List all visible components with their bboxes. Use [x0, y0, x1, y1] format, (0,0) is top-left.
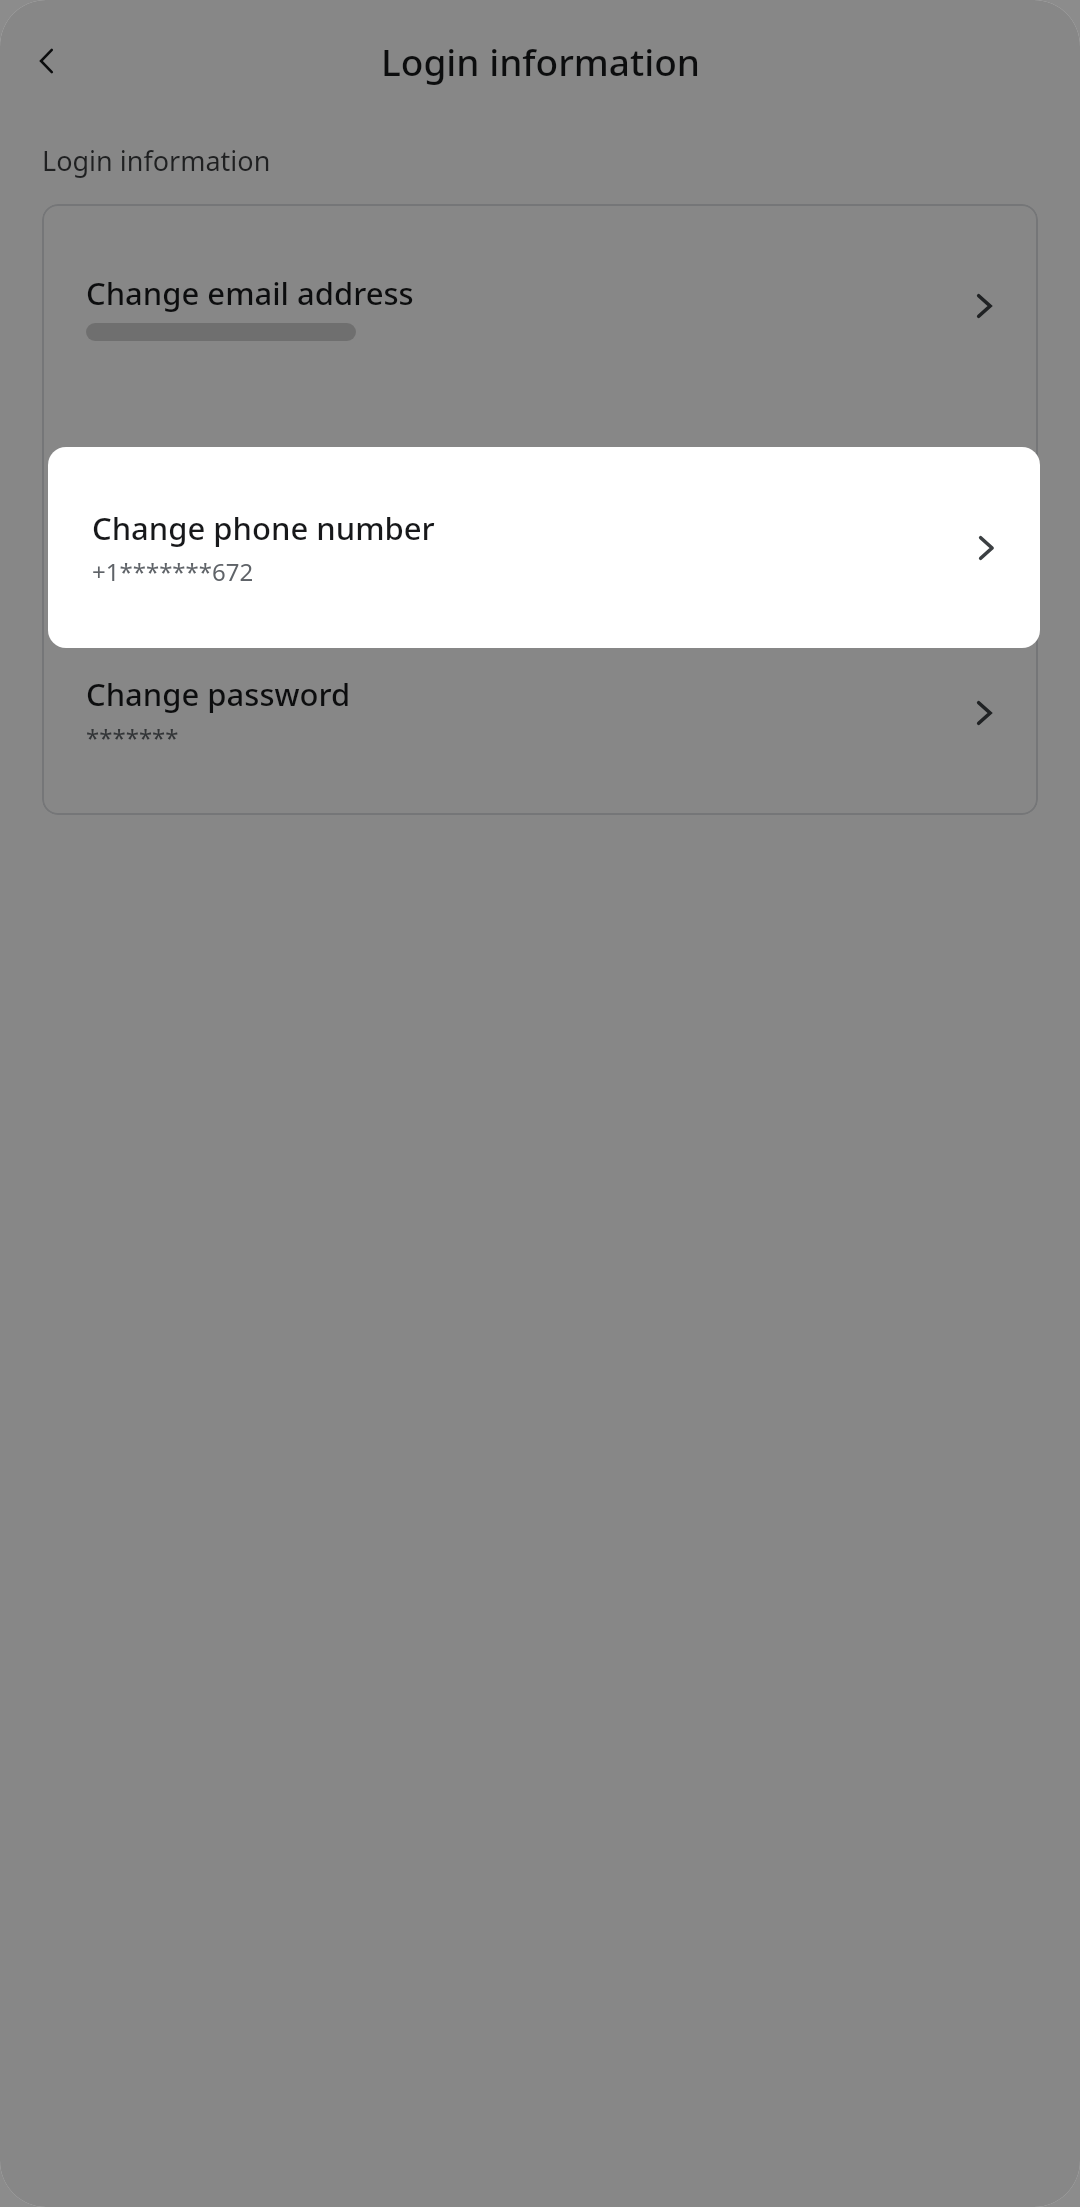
button[interactable]: Change phone number: [42, 408, 1038, 611]
button[interactable]: Change password: [42, 611, 1038, 815]
button[interactable]: Change email address: [42, 204, 1038, 408]
staticText: Login information: [42, 142, 271, 179]
staticText: Change email address: [86, 272, 414, 314]
button[interactable]: Change phone number: [48, 447, 1040, 648]
staticText: +1*******672: [86, 517, 248, 550]
staticText: Change password: [86, 673, 351, 715]
staticText: Login information: [381, 36, 700, 86]
button[interactable]: Back: [16, 30, 78, 92]
staticText: +1*******672: [92, 555, 254, 588]
staticText: Change phone number: [92, 507, 435, 549]
staticText: *******: [86, 721, 179, 754]
